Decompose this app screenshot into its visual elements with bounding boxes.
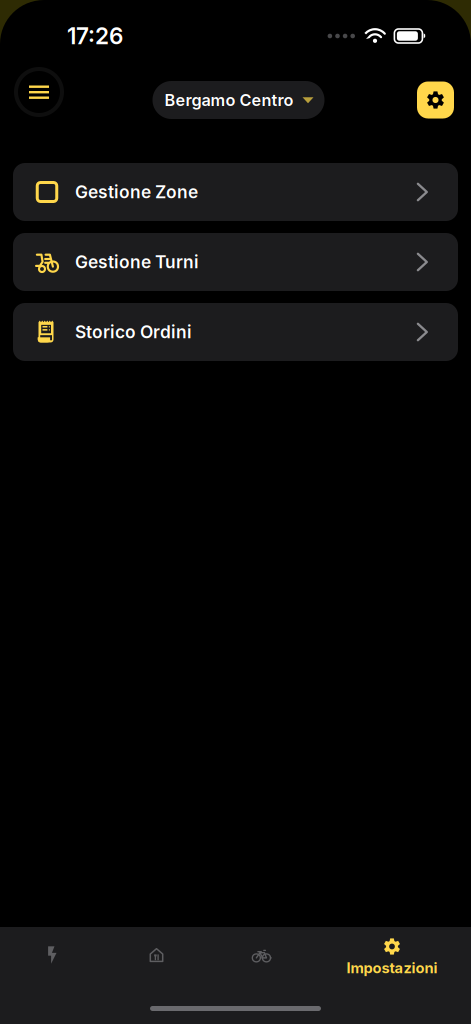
button[interactable]: Storico Ordini: [13, 303, 458, 361]
button[interactable]: Menu: [18, 71, 60, 113]
button[interactable]: Bergamo Centro: [152, 73, 324, 111]
staticText: Storico Ordini: [75, 321, 192, 342]
button[interactable]: Impostazioni: [332, 938, 452, 978]
button[interactable]: Gestione Zone: [13, 163, 458, 221]
staticText: Impostazioni: [346, 959, 437, 977]
staticText: Gestione Turni: [75, 251, 199, 272]
button[interactable]: Ordini rapidi: [0, 938, 104, 978]
staticText: Gestione Zone: [75, 181, 198, 202]
button[interactable]: Gestione Turni: [13, 233, 458, 291]
staticText: Bergamo Centro: [164, 90, 293, 110]
button[interactable]: Impostazioni: [417, 73, 454, 110]
staticText: 17:26: [67, 22, 123, 50]
button[interactable]: Home: [104, 938, 209, 978]
button[interactable]: Rider: [209, 938, 314, 978]
